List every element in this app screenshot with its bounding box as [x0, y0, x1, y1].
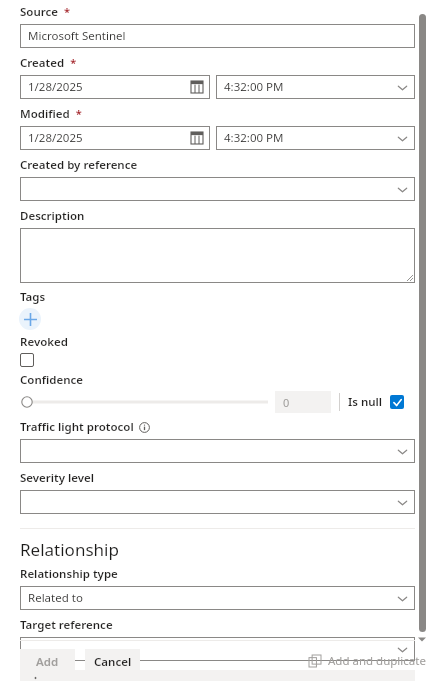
- staticText: 1/28/2025: [28, 130, 191, 146]
- button[interactable]: Related to: [20, 586, 415, 610]
- staticText: Cancel: [94, 654, 132, 670]
- staticText: Relationship: [20, 538, 119, 561]
- other: Scroll down: [417, 634, 427, 644]
- button[interactable]: 4:32:00 PM: [216, 126, 415, 150]
- button[interactable]: Microsoft Sentinel: [20, 24, 415, 48]
- staticText: Related to: [28, 590, 397, 606]
- staticText: Created *: [20, 55, 77, 71]
- button[interactable]: 1/28/2025: [20, 126, 210, 150]
- button[interactable]: [20, 637, 415, 661]
- button[interactable]: Add and duplicate: [309, 653, 426, 669]
- staticText: Modified *: [20, 106, 82, 122]
- button[interactable]: [20, 490, 415, 514]
- staticText: Target reference: [20, 617, 113, 633]
- staticText: 4:32:00 PM: [224, 79, 397, 95]
- button[interactable]: Add tag: [19, 308, 41, 330]
- staticText: 4:32:00 PM: [224, 130, 397, 146]
- staticText: Revoked: [20, 334, 68, 350]
- staticText: Relationship type: [20, 566, 118, 582]
- staticText: [28, 641, 397, 657]
- staticText: Add: [36, 654, 59, 670]
- staticText: Created by reference: [20, 157, 138, 173]
- button[interactable]: [20, 228, 415, 283]
- button[interactable]: [20, 177, 415, 201]
- staticText: Is null: [348, 394, 383, 410]
- button[interactable]: Is null: [348, 394, 404, 410]
- button[interactable]: 4:32:00 PM: [216, 75, 415, 99]
- staticText: 1/28/2025: [28, 79, 191, 95]
- button[interactable]: Add: [20, 649, 75, 674]
- staticText: Description: [20, 208, 85, 224]
- button[interactable]: Cancel: [85, 649, 140, 674]
- button[interactable]: 0: [275, 391, 331, 413]
- button[interactable]: 1/28/2025: [20, 75, 210, 99]
- staticText: Source *: [20, 4, 71, 20]
- staticText: Microsoft Sentinel: [28, 28, 408, 44]
- button[interactable]: [20, 439, 415, 463]
- button[interactable]: [20, 393, 268, 411]
- staticText: Confidence: [20, 372, 84, 388]
- staticText: Severity level: [20, 470, 95, 486]
- button[interactable]: Revoked: [20, 353, 34, 367]
- staticText: Add and duplicate: [328, 653, 426, 669]
- staticText: Traffic light protocol: [20, 419, 134, 435]
- staticText: Tags: [20, 289, 46, 305]
- staticText: 0: [283, 395, 290, 410]
